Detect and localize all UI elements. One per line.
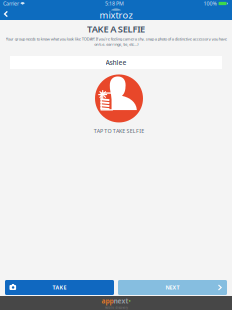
staticText: TAKE A SELFIE <box>87 23 145 35</box>
button[interactable]: Back <box>0 8 11 19</box>
staticText: Your group needs to know what you look l… <box>5 36 226 47</box>
staticText: NEXT <box>165 284 179 291</box>
staticText: mixtroz <box>99 9 132 21</box>
button[interactable]: TAKE <box>5 280 114 295</box>
staticText: 5:18 PM <box>105 0 124 7</box>
staticText: TAP TO TAKE SELFIE <box>94 127 144 135</box>
staticText: TAKE <box>52 284 66 291</box>
staticText: next <box>113 296 128 305</box>
staticText: Carrier <box>3 0 19 7</box>
staticText: mobile discovery <box>104 306 127 309</box>
staticText: Ashlee <box>105 58 126 67</box>
button[interactable]: TAP TO TAKE SELFIE <box>69 75 169 133</box>
staticText: app <box>101 296 113 305</box>
button[interactable]: NEXT <box>118 280 227 295</box>
staticText: 100% <box>204 0 217 7</box>
